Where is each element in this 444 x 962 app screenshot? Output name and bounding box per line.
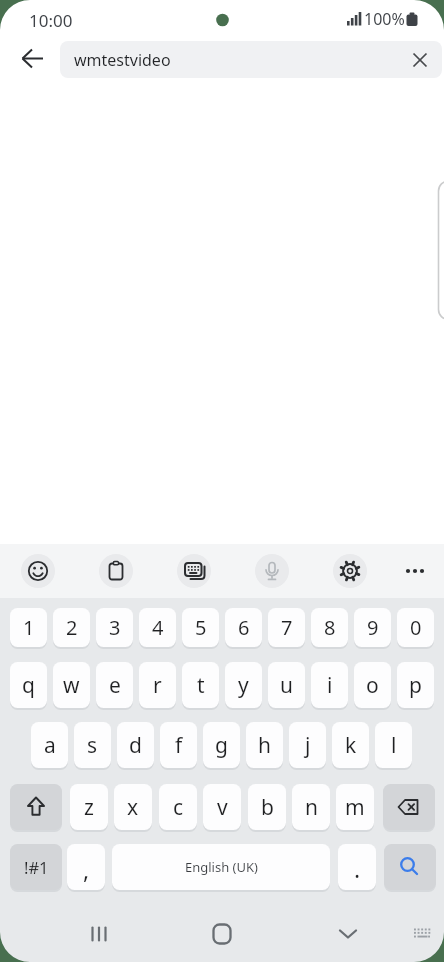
staticText: 3 bbox=[109, 614, 121, 641]
button[interactable]: r bbox=[139, 662, 176, 708]
button[interactable]: n bbox=[292, 784, 330, 830]
staticText: !#1 bbox=[24, 856, 49, 878]
button[interactable]: 0 bbox=[397, 608, 434, 647]
button[interactable]: 4 bbox=[139, 608, 176, 647]
staticText: x bbox=[127, 793, 139, 822]
button[interactable]: !#1 bbox=[10, 844, 62, 890]
staticText: , bbox=[83, 854, 90, 885]
button[interactable]: y bbox=[225, 662, 262, 708]
button[interactable]: 3 bbox=[96, 608, 133, 647]
button[interactable]: 8 bbox=[311, 608, 348, 647]
button[interactable] bbox=[328, 914, 368, 954]
button[interactable]: k bbox=[332, 722, 369, 768]
button[interactable]: , bbox=[67, 844, 105, 890]
staticText: 4 bbox=[152, 614, 164, 641]
button[interactable]: m bbox=[336, 784, 374, 830]
staticText: wmtestvideo bbox=[74, 49, 171, 71]
button[interactable] bbox=[384, 844, 436, 890]
button[interactable] bbox=[400, 554, 434, 588]
staticText: h bbox=[258, 731, 271, 760]
staticText: r bbox=[153, 671, 162, 700]
button[interactable]: z bbox=[70, 784, 108, 830]
staticText: u bbox=[280, 671, 293, 700]
button[interactable] bbox=[383, 784, 435, 830]
staticText: 10:00 bbox=[29, 9, 73, 32]
button[interactable]: q bbox=[10, 662, 47, 708]
button[interactable] bbox=[21, 554, 55, 588]
staticText: y bbox=[238, 671, 249, 700]
button[interactable]: b bbox=[248, 784, 286, 830]
button[interactable] bbox=[202, 914, 242, 954]
staticText: d bbox=[129, 731, 142, 760]
staticText: t bbox=[197, 671, 205, 700]
button[interactable]: h bbox=[246, 722, 283, 768]
button[interactable] bbox=[79, 914, 119, 954]
staticText: g bbox=[215, 731, 228, 760]
staticText: n bbox=[305, 793, 318, 822]
button[interactable]: 7 bbox=[268, 608, 305, 647]
button[interactable]: u bbox=[268, 662, 305, 708]
button[interactable]: x bbox=[114, 784, 152, 830]
button[interactable]: l bbox=[375, 722, 412, 768]
staticText: f bbox=[175, 731, 183, 760]
staticText: c bbox=[173, 793, 184, 822]
button[interactable] bbox=[255, 554, 289, 588]
staticText: l bbox=[391, 731, 397, 760]
staticText: 2 bbox=[66, 614, 78, 641]
staticText: p bbox=[409, 671, 422, 700]
button[interactable]: . bbox=[338, 844, 376, 890]
staticText: 5 bbox=[195, 614, 207, 641]
staticText: 9 bbox=[367, 614, 379, 641]
button[interactable]: 9 bbox=[354, 608, 391, 647]
button[interactable]: p bbox=[397, 662, 434, 708]
button[interactable] bbox=[10, 784, 62, 830]
staticText: 8 bbox=[324, 614, 336, 641]
button[interactable] bbox=[13, 39, 53, 79]
staticText: z bbox=[84, 793, 94, 822]
button[interactable]: wmtestvideo bbox=[60, 41, 442, 78]
button[interactable] bbox=[99, 554, 133, 588]
button[interactable] bbox=[177, 554, 211, 588]
button[interactable]: j bbox=[289, 722, 326, 768]
button[interactable]: 2 bbox=[53, 608, 90, 647]
button[interactable]: f bbox=[160, 722, 197, 768]
staticText: j bbox=[305, 731, 311, 760]
button[interactable]: w bbox=[53, 662, 90, 708]
staticText: i bbox=[327, 671, 333, 700]
staticText: v bbox=[217, 793, 228, 822]
staticText: q bbox=[22, 671, 35, 700]
button[interactable]: 6 bbox=[225, 608, 262, 647]
button[interactable]: 1 bbox=[10, 608, 47, 647]
button[interactable]: o bbox=[354, 662, 391, 708]
staticText: 100% bbox=[364, 8, 405, 30]
button[interactable]: a bbox=[31, 722, 68, 768]
staticText: . bbox=[354, 853, 361, 884]
staticText: 7 bbox=[281, 614, 293, 641]
staticText: w bbox=[63, 671, 80, 700]
staticText: k bbox=[345, 731, 357, 760]
staticText: o bbox=[366, 671, 379, 700]
button[interactable]: t bbox=[182, 662, 219, 708]
button[interactable]: i bbox=[311, 662, 348, 708]
staticText: 1 bbox=[23, 614, 35, 641]
button[interactable]: g bbox=[203, 722, 240, 768]
button[interactable]: c bbox=[159, 784, 197, 830]
staticText: English (UK) bbox=[185, 858, 258, 876]
button[interactable]: 5 bbox=[182, 608, 219, 647]
button[interactable]: v bbox=[203, 784, 241, 830]
staticText: b bbox=[261, 793, 274, 822]
staticText: a bbox=[44, 731, 56, 760]
staticText: 6 bbox=[238, 614, 250, 641]
staticText: s bbox=[87, 731, 98, 760]
staticText: 0 bbox=[410, 614, 422, 641]
button[interactable] bbox=[333, 554, 367, 588]
button[interactable]: s bbox=[74, 722, 111, 768]
button[interactable]: English (UK) bbox=[112, 844, 330, 890]
button[interactable]: e bbox=[96, 662, 133, 708]
button[interactable]: d bbox=[117, 722, 154, 768]
staticText: m bbox=[345, 793, 365, 822]
staticText: e bbox=[109, 671, 121, 700]
